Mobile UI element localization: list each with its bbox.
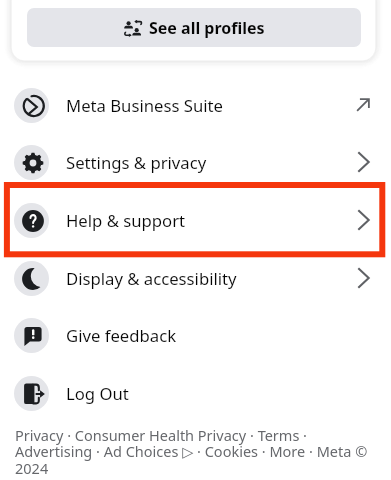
button[interactable]: Display & accessibility bbox=[0, 249, 391, 307]
other: Open Settings & privacy bbox=[357, 151, 370, 173]
staticText: Give feedback bbox=[66, 324, 177, 347]
button[interactable]: Log Out bbox=[0, 364, 391, 422]
staticText: See all profiles bbox=[149, 17, 265, 39]
staticText: Settings & privacy bbox=[66, 151, 207, 174]
staticText: Meta Business Suite bbox=[66, 94, 223, 117]
staticText: Log Out bbox=[66, 382, 129, 405]
button[interactable]: Meta Business Suite bbox=[0, 76, 391, 134]
other: Open Display & accessibility bbox=[357, 267, 370, 289]
button[interactable]: Give feedback bbox=[0, 306, 391, 364]
staticText: Help & support bbox=[66, 209, 186, 232]
button[interactable]: Settings & privacy bbox=[0, 133, 391, 191]
other: Open Help & support bbox=[357, 209, 370, 231]
staticText: Privacy · Consumer Health Privacy · Term… bbox=[15, 425, 372, 478]
staticText: Display & accessibility bbox=[66, 267, 237, 290]
button[interactable]: See all profiles bbox=[27, 8, 361, 47]
button[interactable]: Help & support bbox=[0, 191, 391, 249]
other: Open Meta Business Suite in new window bbox=[356, 98, 370, 112]
